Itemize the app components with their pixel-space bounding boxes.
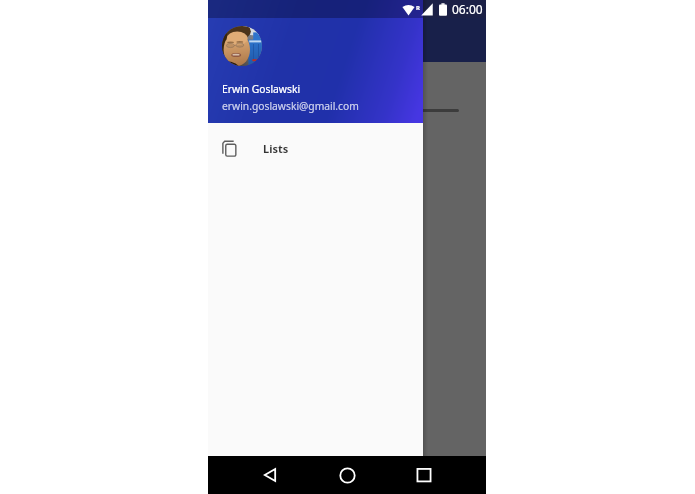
button[interactable]: Recents	[402, 456, 446, 494]
button[interactable]: Erwin Goslawski	[208, 0, 423, 123]
button[interactable]: Home	[325, 456, 369, 494]
staticText: 06:00	[452, 1, 483, 17]
staticText: Lists	[263, 141, 289, 156]
button[interactable]: Back	[248, 456, 292, 494]
staticText: erwin.goslawski@gmail.com	[222, 99, 359, 113]
staticText: R	[416, 4, 420, 12]
staticText: Erwin Goslawski	[222, 82, 301, 96]
button[interactable]: Lists	[208, 123, 423, 173]
